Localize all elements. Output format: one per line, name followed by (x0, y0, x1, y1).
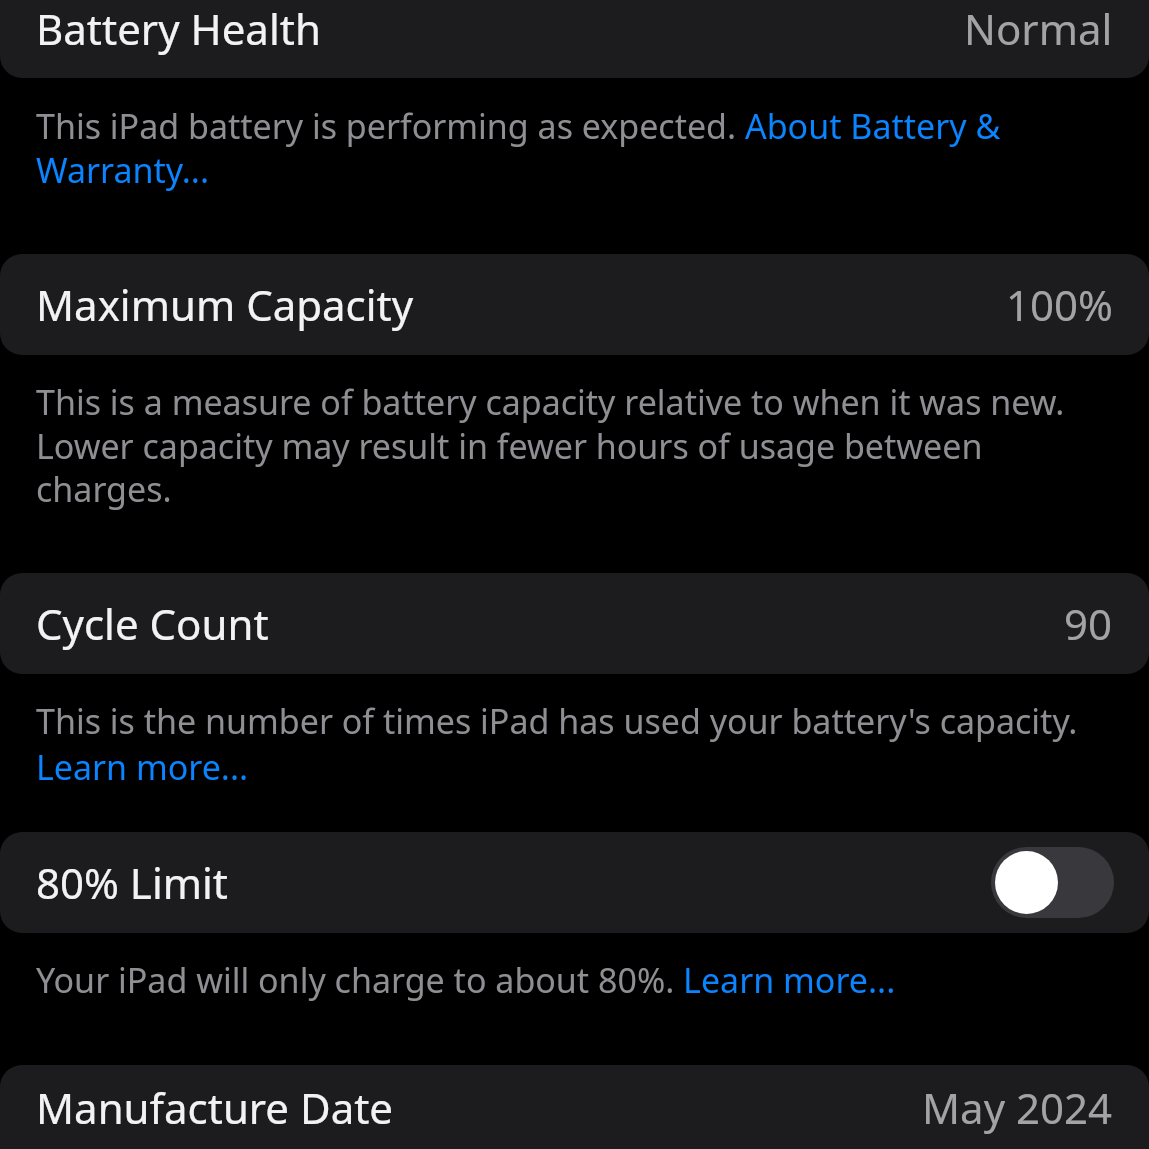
button[interactable]: This iPad battery is performing as expec… (36, 103, 1113, 193)
staticText: This is the number of times iPad has use… (36, 698, 1078, 744)
staticText: 90 (1064, 595, 1113, 652)
button[interactable]: Manufacture Date (0, 1065, 1149, 1149)
button[interactable]: Learn more... (36, 744, 249, 790)
button[interactable]: 80% Limit toggle, off (991, 847, 1114, 918)
staticText: Your iPad will only charge to about 80%.… (36, 957, 896, 1003)
staticText: Maximum Capacity (36, 276, 414, 333)
button[interactable]: Battery Health (0, 0, 1149, 78)
staticText: Cycle Count (36, 595, 269, 652)
staticText: 100% (1006, 276, 1113, 333)
staticText: Battery Health (36, 0, 321, 57)
staticText: 80% Limit (36, 854, 228, 911)
staticText: May 2024 (922, 1079, 1113, 1136)
button[interactable]: Your iPad will only charge to about 80%.… (36, 957, 1113, 1003)
staticText: This iPad battery is performing as expec… (36, 103, 1113, 193)
button[interactable]: Cycle Count (0, 573, 1149, 674)
staticText: This is a measure of battery capacity re… (36, 379, 1113, 512)
staticText: Manufacture Date (36, 1079, 394, 1136)
staticText: Normal (964, 0, 1113, 57)
staticText: Learn more... (36, 744, 249, 790)
button[interactable]: Maximum Capacity (0, 254, 1149, 355)
